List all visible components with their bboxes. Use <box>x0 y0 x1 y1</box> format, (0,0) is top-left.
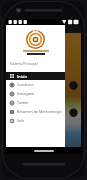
button[interactable]: Salir <box>6 116 65 125</box>
button[interactable]: Resumen de Meteorologia <box>6 107 65 116</box>
button[interactable]: Inicio <box>6 72 65 80</box>
staticText: Twitter <box>17 100 29 105</box>
button[interactable]: Twitter <box>6 98 65 107</box>
staticText: Salir <box>17 118 25 123</box>
staticText: Cuaderno <box>17 82 34 87</box>
staticText: Resumen de Meteorologia <box>17 109 62 114</box>
button[interactable]: Cuaderno <box>6 80 65 89</box>
staticText: Galeria Principal <box>10 61 38 66</box>
staticText: Inicio <box>17 74 27 79</box>
staticText: Instagram <box>17 91 35 96</box>
button[interactable]: Instagram <box>6 89 65 98</box>
